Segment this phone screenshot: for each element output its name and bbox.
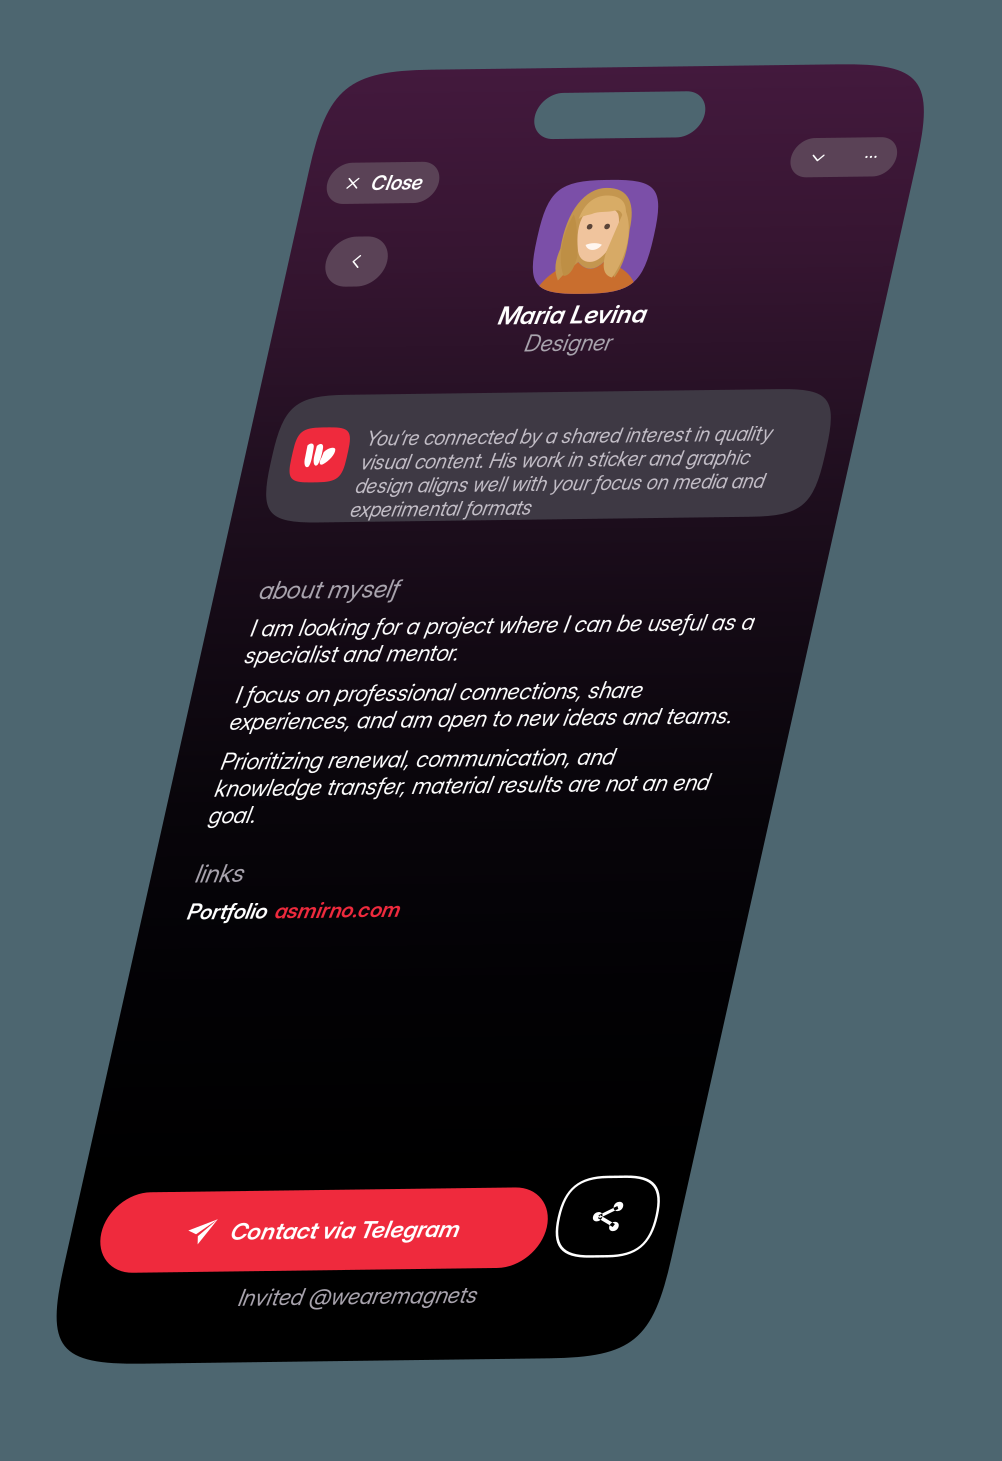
staticText: Maria Levina — [226, 237, 376, 267]
staticText: You’re connected by a shared interest in… — [119, 364, 533, 461]
staticText: Prioritizing renewal, communication, and… — [45, 690, 546, 773]
staticText: Designer — [259, 267, 347, 295]
staticText: I am looking for a project where I can b… — [45, 555, 555, 610]
button[interactable]: More options — [541, 75, 593, 115]
button[interactable]: Contact via Telegram — [30, 1143, 481, 1225]
staticText: I focus on professional connections, sha… — [45, 622, 554, 677]
staticText: asmirno.com — [134, 844, 261, 870]
staticText: Contact via Telegram — [162, 1169, 394, 1198]
button[interactable]: Collapse — [486, 75, 541, 115]
button[interactable]: Share — [491, 1133, 590, 1214]
button[interactable]: asmirno.com — [134, 844, 261, 870]
staticText: Invited @wearemagnets — [185, 1238, 427, 1266]
